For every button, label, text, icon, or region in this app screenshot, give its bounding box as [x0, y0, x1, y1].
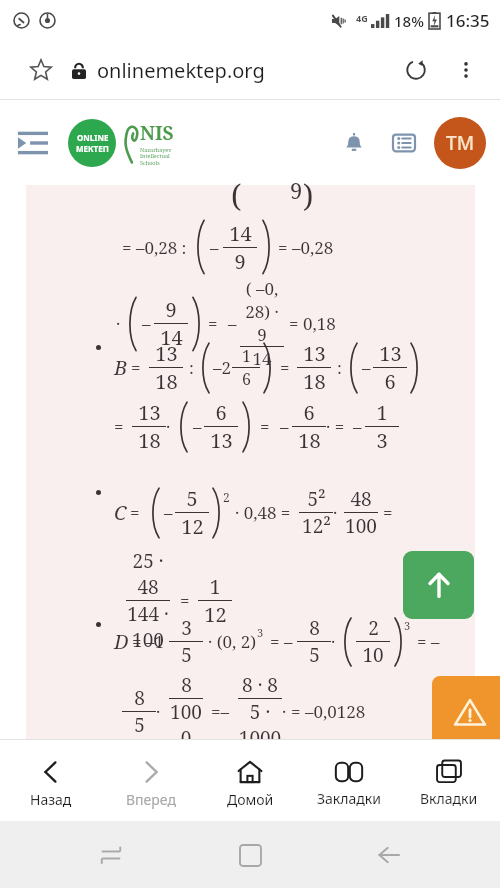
- staticText: 18: [138, 427, 161, 454]
- staticText: –: [362, 356, 371, 379]
- staticText: = –0,0128: [291, 700, 366, 723]
- staticText: =: [208, 312, 218, 335]
- staticText: 8 · 8: [242, 672, 278, 698]
- staticText: 6: [384, 368, 396, 395]
- button[interactable]: Назад: [3, 744, 99, 818]
- staticText: 14: [160, 324, 183, 351]
- staticText: 1: [242, 345, 251, 367]
- staticText: = –: [270, 630, 293, 653]
- button[interactable]: Вкладки: [401, 744, 497, 818]
- staticText: =: [130, 501, 140, 524]
- staticText: 5: [309, 642, 320, 668]
- staticText: 14: [229, 220, 252, 247]
- button[interactable]: Report a problem: [432, 676, 500, 749]
- staticText: 100: [345, 513, 377, 539]
- button[interactable]: Bookmark: [24, 53, 58, 87]
- staticText: ·: [282, 700, 287, 723]
- button[interactable]: Reload: [398, 52, 434, 88]
- staticText: = –1: [132, 630, 164, 653]
- staticText: TM: [446, 130, 475, 156]
- staticText: 25 · 48: [126, 548, 170, 600]
- staticText: Домой: [227, 790, 274, 809]
- staticText: 1: [376, 399, 388, 426]
- staticText: 13: [210, 427, 233, 454]
- staticText: 5: [181, 642, 192, 668]
- staticText: 16:35: [446, 9, 490, 32]
- staticText: 144 · 100: [126, 601, 170, 653]
- staticText: ·: [333, 501, 338, 524]
- button[interactable]: Home: [222, 827, 278, 883]
- staticText: 12: [204, 601, 227, 628]
- button[interactable]: Домой: [202, 744, 298, 818]
- staticText: 14: [252, 347, 272, 370]
- staticText: ( –0, 28) · 9: [240, 277, 284, 346]
- staticText: 8: [181, 672, 192, 698]
- staticText: 1: [209, 573, 221, 600]
- staticText: 5: [186, 485, 198, 512]
- staticText: 4G: [356, 12, 368, 24]
- button[interactable]: Back: [361, 827, 417, 883]
- staticText: 13: [138, 399, 161, 426]
- staticText: 12²: [302, 513, 331, 539]
- staticText: МЕКТЕП: [76, 143, 109, 154]
- staticText: 9: [165, 296, 177, 323]
- staticText: =: [383, 501, 393, 524]
- staticText: · =: [326, 415, 345, 438]
- button[interactable]: Notifications: [334, 123, 374, 163]
- staticText: 18: [303, 368, 326, 395]
- button[interactable]: Recent apps: [83, 827, 139, 883]
- button[interactable]: Закладки: [301, 744, 397, 818]
- button[interactable]: More options: [448, 52, 484, 88]
- staticText: 6: [215, 399, 227, 426]
- staticText: = –: [417, 630, 440, 653]
- staticText: 6: [303, 399, 315, 426]
- staticText: 2: [223, 489, 230, 505]
- staticText: 10: [362, 642, 384, 668]
- button[interactable]: Menu: [10, 121, 54, 165]
- staticText: · 0,48 =: [235, 501, 291, 524]
- staticText: = 0,18: [289, 312, 336, 335]
- staticText: 8: [309, 615, 320, 641]
- staticText: =: [280, 356, 290, 379]
- staticText: –: [193, 415, 202, 438]
- staticText: 3: [376, 427, 388, 454]
- staticText: 48: [350, 486, 372, 512]
- staticText: 5²: [307, 486, 326, 512]
- staticText: 18: [298, 427, 321, 454]
- staticText: Nazarbayev Intellectual Schools: [140, 146, 172, 167]
- staticText: = –0,28 :: [122, 236, 187, 259]
- staticText: 18: [155, 368, 178, 395]
- staticText: –: [228, 312, 237, 335]
- button[interactable]: Вперед: [103, 744, 199, 818]
- button[interactable]: ONLINE: [68, 119, 174, 167]
- staticText: =: [131, 356, 141, 379]
- staticText: 3: [257, 625, 264, 640]
- staticText: 13: [155, 340, 178, 367]
- staticText: 13: [379, 340, 402, 367]
- staticText: =–: [211, 700, 230, 723]
- staticText: 13: [303, 340, 326, 367]
- staticText: (: [231, 175, 242, 216]
- staticText: 12: [181, 513, 204, 540]
- staticText: · (0, 2): [208, 630, 257, 653]
- staticText: –: [280, 415, 289, 438]
- staticText: 9: [290, 175, 303, 205]
- staticText: Закладки: [317, 789, 381, 808]
- button[interactable]: onlinemektep.org: [72, 57, 265, 84]
- staticText: NIS: [140, 120, 174, 146]
- staticText: ONLINE: [77, 132, 109, 143]
- staticText: =: [180, 589, 190, 612]
- staticText: 5 · 1000: [238, 699, 282, 751]
- staticText: Вкладки: [420, 789, 478, 808]
- staticText: –: [353, 415, 362, 438]
- staticText: ·: [116, 312, 121, 335]
- staticText: ): [303, 175, 314, 216]
- staticText: :: [337, 356, 342, 379]
- button[interactable]: Profile TM: [434, 117, 486, 169]
- staticText: –: [142, 312, 151, 335]
- staticText: Вперед: [126, 790, 176, 809]
- button[interactable]: Tasks: [384, 123, 424, 163]
- button[interactable]: Scroll to top: [403, 551, 474, 619]
- staticText: =: [114, 415, 124, 438]
- staticText: D: [114, 628, 129, 655]
